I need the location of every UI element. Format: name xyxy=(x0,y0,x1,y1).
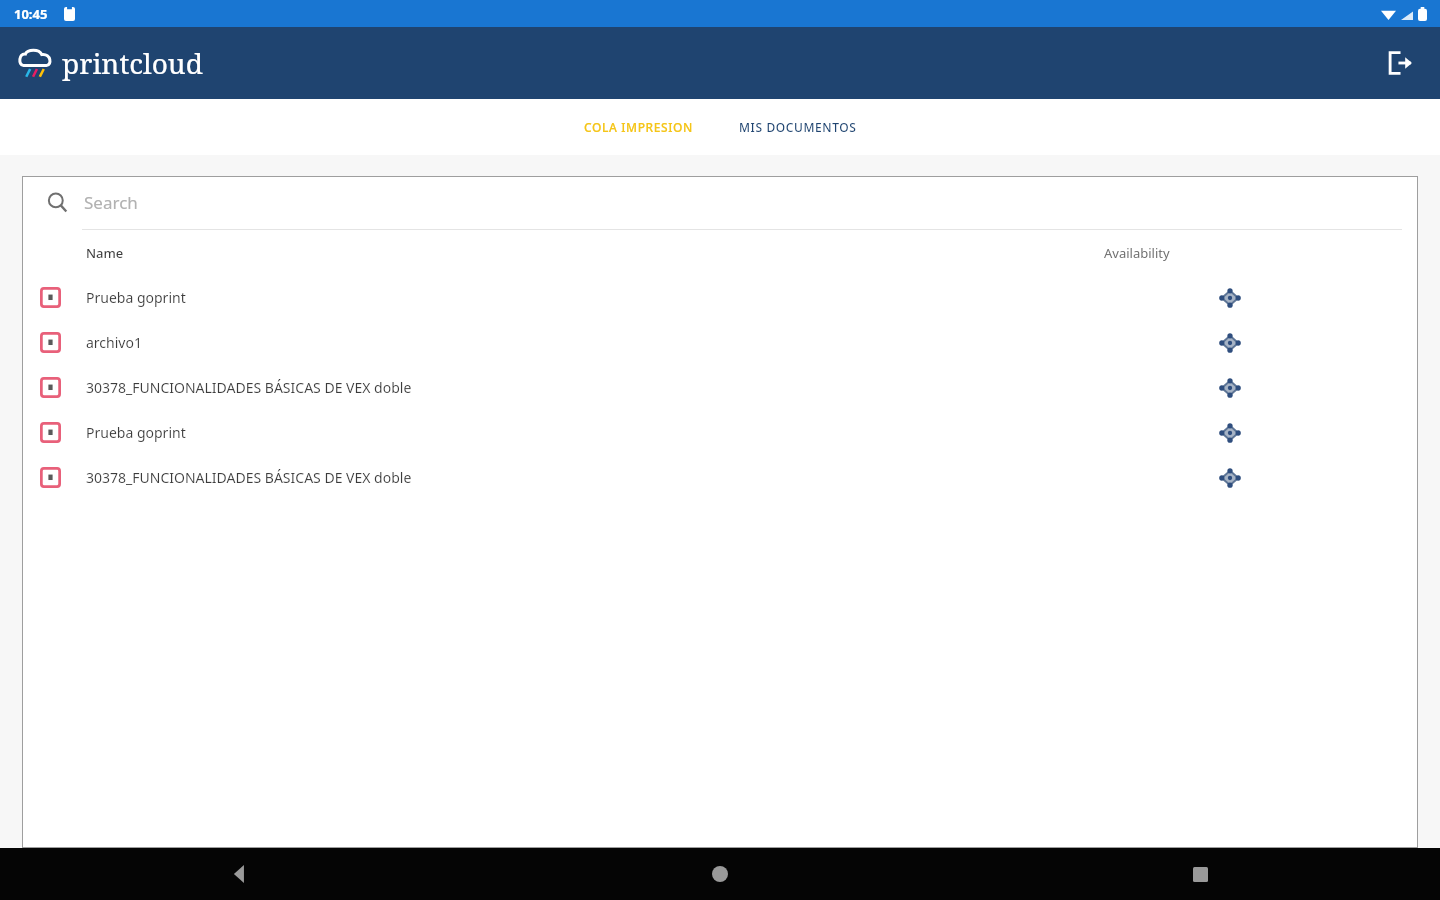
button[interactable]: 30378_FUNCIONALIDADES BÁSICAS DE VEX dob… xyxy=(22,365,1418,410)
button[interactable]: Availability xyxy=(1210,458,1250,498)
staticText: 30378_FUNCIONALIDADES BÁSICAS DE VEX dob… xyxy=(86,378,412,397)
button[interactable]: Availability xyxy=(1210,413,1250,453)
button[interactable]: 30378_FUNCIONALIDADES BÁSICAS DE VEX dob… xyxy=(22,455,1418,500)
button[interactable]: Back xyxy=(0,848,480,900)
button[interactable]: Availability xyxy=(1210,323,1250,363)
staticText: printcloud xyxy=(62,44,203,82)
staticText: Prueba goprint xyxy=(86,288,186,307)
button[interactable]: Log out xyxy=(1378,41,1422,85)
staticText: archivo1 xyxy=(86,333,142,352)
button[interactable]: archivo1 xyxy=(22,320,1418,365)
button[interactable]: Search xyxy=(22,176,1418,229)
staticText: Availability xyxy=(1104,244,1170,262)
button[interactable]: Availability xyxy=(1210,278,1250,318)
staticText: Prueba goprint xyxy=(86,423,186,442)
staticText: Search xyxy=(84,191,138,214)
staticText: COLA IMPRESION xyxy=(584,119,693,135)
staticText: 10:45 xyxy=(14,5,48,23)
button[interactable]: Availability xyxy=(1210,368,1250,408)
button[interactable]: Prueba goprint xyxy=(22,275,1418,320)
staticText: 30378_FUNCIONALIDADES BÁSICAS DE VEX dob… xyxy=(86,468,412,487)
button[interactable]: Prueba goprint xyxy=(22,410,1418,455)
button[interactable]: Home xyxy=(480,848,960,900)
staticText: MIS DOCUMENTOS xyxy=(739,119,857,135)
button[interactable]: Recent apps xyxy=(960,848,1440,900)
staticText: Name xyxy=(86,244,124,262)
button[interactable]: MIS DOCUMENTOS xyxy=(725,109,871,145)
button[interactable]: COLA IMPRESION xyxy=(570,109,707,145)
